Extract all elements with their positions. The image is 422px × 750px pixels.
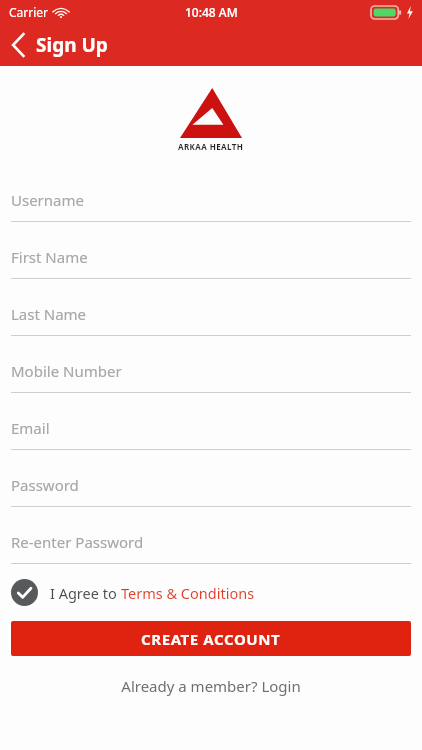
staticText: 10:48 AM bbox=[185, 4, 238, 20]
staticText: I Agree to bbox=[50, 583, 121, 603]
staticText: First Name bbox=[11, 247, 88, 267]
staticText: Mobile Number bbox=[11, 361, 122, 381]
other: I agree checkbox bbox=[11, 579, 38, 606]
button[interactable]: Terms & Conditions bbox=[121, 583, 255, 603]
staticText: CREATE ACCOUNT bbox=[141, 629, 281, 649]
staticText: Password bbox=[11, 475, 79, 495]
button[interactable]: Email bbox=[11, 407, 411, 450]
button[interactable]: Username bbox=[11, 179, 411, 222]
button[interactable]: Back bbox=[0, 28, 120, 62]
button[interactable]: First Name bbox=[11, 236, 411, 279]
button[interactable]: Last Name bbox=[11, 293, 411, 336]
staticText: Email bbox=[11, 418, 50, 438]
button[interactable]: CREATE ACCOUNT bbox=[11, 621, 411, 656]
staticText: Carrier bbox=[9, 4, 49, 20]
staticText: Sign Up bbox=[36, 32, 108, 58]
button[interactable]: Mobile Number bbox=[11, 350, 411, 393]
staticText: ARKAA HEALTH bbox=[178, 141, 244, 152]
button[interactable]: Already a member? Login bbox=[115, 670, 307, 702]
button[interactable]: Password bbox=[11, 464, 411, 507]
button[interactable]: I agree checkbox bbox=[11, 576, 411, 609]
staticText: Last Name bbox=[11, 304, 87, 324]
staticText: Re-enter Password bbox=[11, 532, 144, 552]
staticText: Username bbox=[11, 190, 84, 210]
button[interactable]: Re-enter Password bbox=[11, 521, 411, 564]
